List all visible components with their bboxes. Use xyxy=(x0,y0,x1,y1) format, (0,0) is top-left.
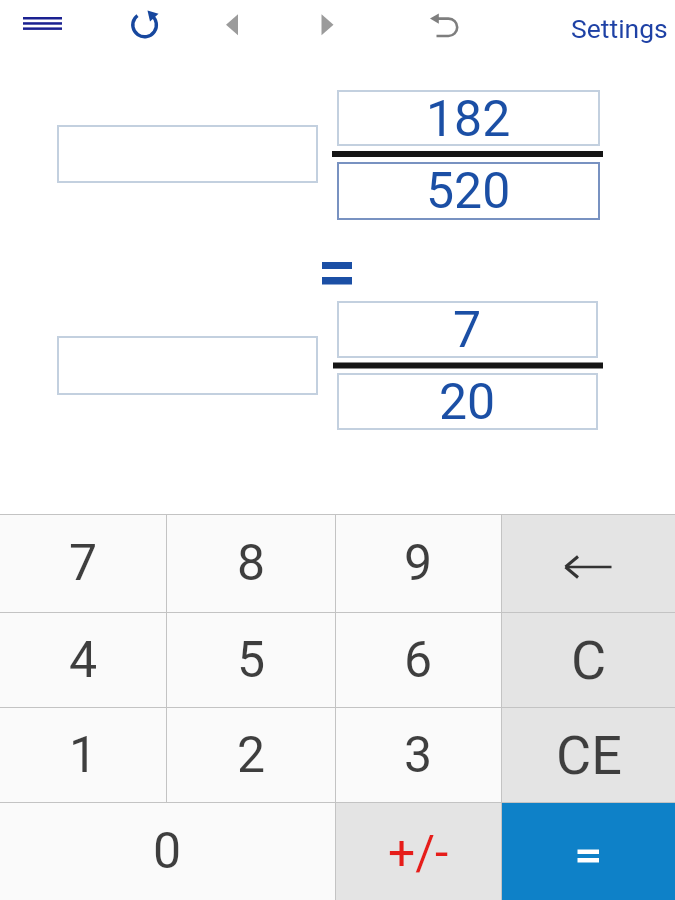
staticText: C xyxy=(571,629,607,692)
staticText: 5 xyxy=(237,631,266,690)
staticText: 3 xyxy=(404,726,433,785)
staticText: 4 xyxy=(69,631,98,690)
staticText: 7 xyxy=(69,534,98,593)
staticText: 9 xyxy=(404,534,433,593)
staticText: CE xyxy=(556,724,622,787)
staticText: 8 xyxy=(237,534,266,593)
staticText: 182 xyxy=(426,90,511,146)
staticText: 520 xyxy=(426,162,511,220)
staticText: +/- xyxy=(388,824,449,880)
staticText: 20 xyxy=(439,373,496,430)
staticText: 6 xyxy=(404,631,433,690)
staticText: 1 xyxy=(69,726,98,785)
staticText: 0 xyxy=(153,822,182,881)
staticText: Settings xyxy=(571,13,668,44)
staticText: 7 xyxy=(453,301,482,358)
staticText: 2 xyxy=(237,726,266,785)
